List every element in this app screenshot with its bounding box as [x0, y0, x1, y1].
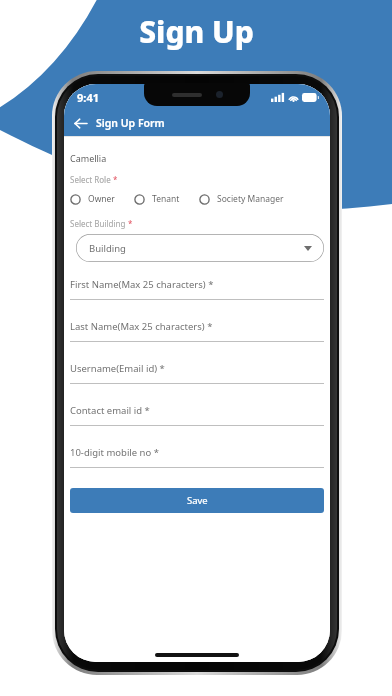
button[interactable]: Building: [76, 234, 324, 262]
button[interactable]: Back: [70, 113, 91, 134]
button[interactable]: 10-digit mobile no *: [70, 446, 324, 468]
staticText: *: [113, 174, 118, 185]
button[interactable]: Contact email id *: [70, 404, 324, 426]
staticText: Sign Up: [139, 11, 254, 52]
staticText: Username(Email id) *: [70, 362, 165, 375]
button[interactable]: Society Manager: [199, 193, 284, 205]
button[interactable]: Save: [70, 488, 324, 513]
staticText: *: [128, 218, 133, 229]
staticText: 9:41: [77, 90, 99, 105]
button[interactable]: Username(Email id) *: [70, 362, 324, 384]
staticText: Contact email id *: [70, 404, 150, 417]
button[interactable]: Tenant: [134, 193, 180, 205]
staticText: First Name(Max 25 characters) *: [70, 278, 214, 291]
staticText: Sign Up Form: [96, 116, 165, 130]
button[interactable]: Last Name(Max 25 characters) *: [70, 320, 324, 342]
staticText: Camellia: [70, 152, 107, 164]
staticText: 10-digit mobile no *: [70, 446, 159, 459]
staticText: Owner: [88, 193, 115, 205]
staticText: Select Building: [70, 218, 126, 229]
staticText: Building: [89, 242, 126, 255]
staticText: Last Name(Max 25 characters) *: [70, 320, 213, 333]
staticText: Society Manager: [217, 193, 284, 205]
staticText: Save: [187, 494, 208, 507]
button[interactable]: First Name(Max 25 characters) *: [70, 278, 324, 300]
button[interactable]: Owner: [70, 193, 115, 205]
staticText: Tenant: [152, 193, 180, 205]
staticText: Select Role: [70, 174, 111, 185]
